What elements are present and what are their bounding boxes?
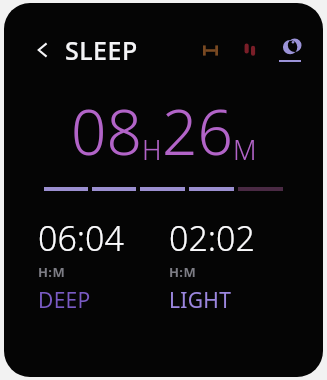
staticText: LIGHT xyxy=(169,286,232,315)
staticText: SLEEP xyxy=(65,33,138,67)
button[interactable]: Sleep xyxy=(277,38,303,62)
button[interactable]: Steps xyxy=(237,37,263,63)
staticText: H xyxy=(142,131,162,168)
button[interactable]: Exercise xyxy=(197,37,223,63)
button[interactable]: 02:02 xyxy=(169,215,301,315)
staticText: 08 xyxy=(71,89,142,173)
staticText: H:M xyxy=(38,263,66,281)
staticText: 02:02 xyxy=(169,215,255,261)
staticText: H:M xyxy=(169,263,197,281)
staticText: 26 xyxy=(162,89,233,173)
staticText: DEEP xyxy=(38,286,91,315)
button[interactable]: 06:04 xyxy=(38,215,169,315)
staticText: M xyxy=(233,131,257,168)
staticText: 06:04 xyxy=(38,215,124,261)
button[interactable]: Back xyxy=(30,37,56,63)
